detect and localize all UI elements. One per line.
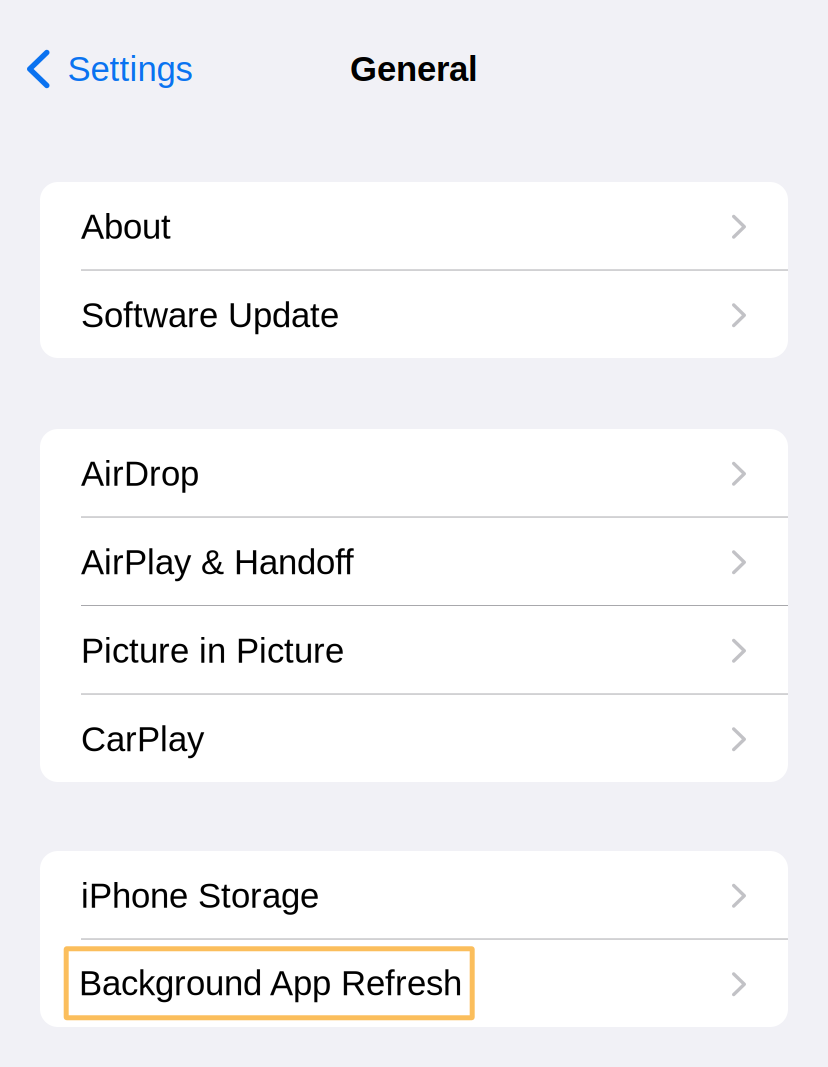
button[interactable]: AirPlay & Handoff [40,517,788,605]
button[interactable]: Picture in Picture [40,606,788,693]
staticText: About [81,207,171,246]
staticText: Settings [67,50,192,88]
staticText: General [350,50,478,88]
button[interactable]: Background App Refresh [40,939,788,1027]
staticText: AirDrop [81,454,199,493]
staticText: AirPlay & Handoff [81,543,354,582]
staticText: Software Update [81,296,339,335]
button[interactable]: Software Update [40,270,788,358]
button[interactable]: AirDrop [40,429,788,516]
button[interactable]: CarPlay [40,694,788,782]
staticText: iPhone Storage [81,876,319,915]
staticText: Background App Refresh [79,964,462,1003]
staticText: Picture in Picture [81,631,344,670]
button[interactable]: About [40,182,788,269]
button[interactable]: Back to Settings [0,40,192,98]
staticText: CarPlay [81,720,204,759]
button[interactable]: iPhone Storage [40,851,788,938]
